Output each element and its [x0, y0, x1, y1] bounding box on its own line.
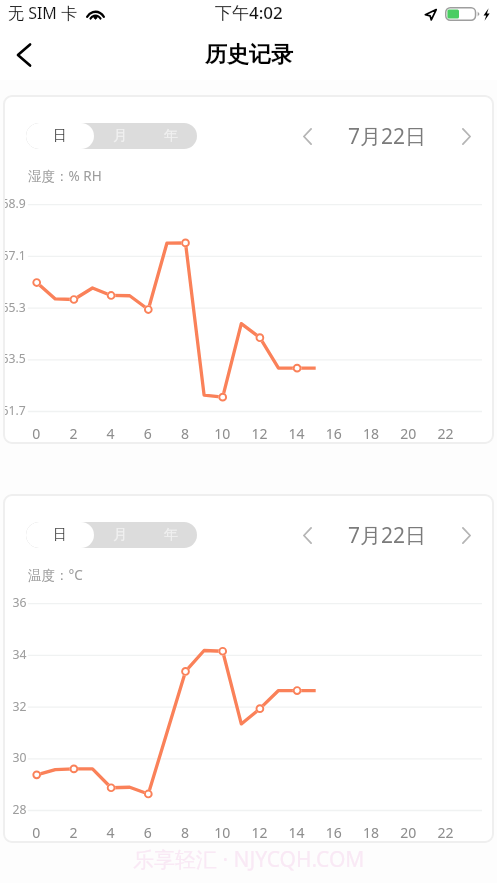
- staticText: 日: [53, 526, 67, 544]
- button[interactable]: 上一天: [291, 518, 323, 552]
- staticText: 月: [113, 526, 127, 544]
- staticText: 7月22日: [348, 122, 427, 151]
- button[interactable]: 年: [145, 522, 197, 548]
- button[interactable]: 返回: [4, 35, 44, 75]
- button[interactable]: 日: [26, 123, 94, 149]
- staticText: 月: [113, 127, 127, 145]
- staticText: 日: [53, 127, 67, 145]
- button[interactable]: 年: [145, 123, 197, 149]
- staticText: 温度：°C: [28, 566, 83, 584]
- staticText: 年: [164, 526, 178, 544]
- staticText: 下午4:02: [215, 1, 283, 24]
- button[interactable]: 下一天: [450, 518, 482, 552]
- staticText: 7月22日: [348, 521, 427, 550]
- button[interactable]: 月: [94, 522, 145, 548]
- button[interactable]: 月: [94, 123, 145, 149]
- button[interactable]: 日: [26, 522, 94, 548]
- staticText: 湿度：% RH: [28, 167, 102, 185]
- staticText: 乐享轻汇 · NJYCQH.COM: [133, 845, 365, 874]
- button[interactable]: 上一天: [291, 119, 323, 153]
- staticText: 无 SIM 卡: [8, 2, 78, 24]
- staticText: 历史记录: [205, 41, 293, 69]
- button[interactable]: 下一天: [450, 119, 482, 153]
- staticText: 年: [164, 127, 178, 145]
